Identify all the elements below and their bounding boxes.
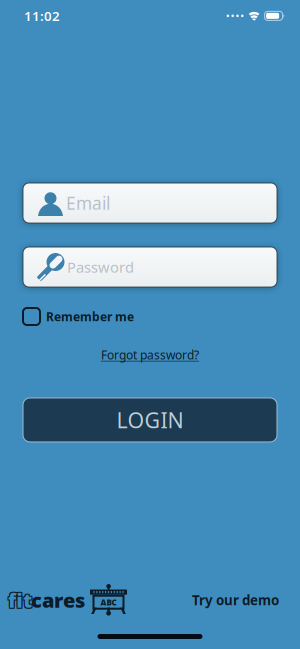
staticText: Remember me [46,308,134,324]
button[interactable]: LOGIN [0,398,300,442]
button[interactable]: Password [0,247,300,287]
staticText: fit [8,587,32,613]
staticText: Email [66,191,110,214]
staticText: fit [9,586,33,612]
button[interactable]: fitcares [8,584,127,616]
button[interactable]: Try our demo [192,591,279,609]
staticText: Password [67,257,134,277]
button[interactable]: Email [0,183,300,223]
staticText: fit [7,588,31,614]
staticText: ABC [100,597,116,608]
staticText: 11:02 [24,7,60,25]
staticText: LOGIN [116,406,183,434]
staticText: fit [7,586,31,612]
staticText: Try our demo [192,591,279,609]
button[interactable]: Remember me [0,308,300,325]
staticText: cares [31,587,85,613]
staticText: Forgot password? [101,347,199,363]
button[interactable]: Forgot password? [101,347,199,363]
staticText: fit [9,588,33,614]
